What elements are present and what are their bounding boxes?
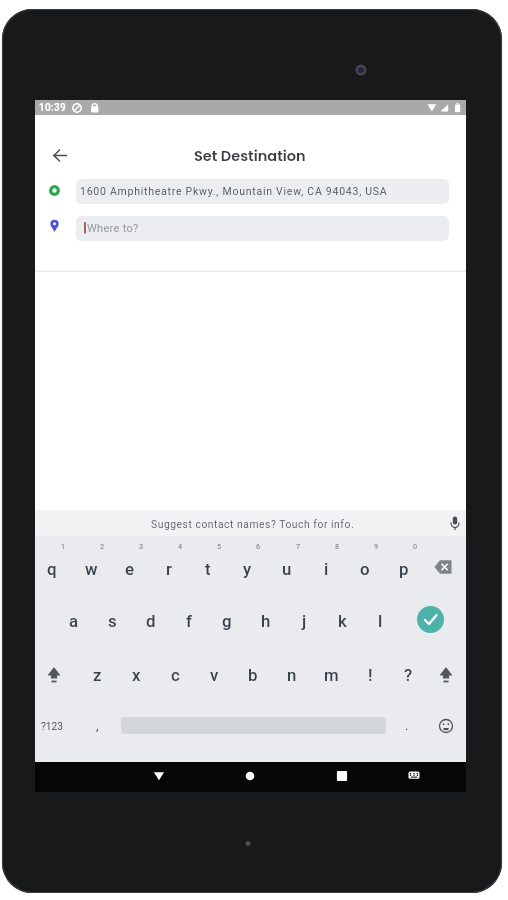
button[interactable]: e [20,547,240,591]
staticText: 8 [335,542,340,550]
staticText: n [287,665,297,685]
staticText: Suggest contact names? Touch for info. [151,518,355,530]
staticText: , [96,718,99,733]
staticText: e [125,559,135,579]
staticText: i [324,559,329,579]
button[interactable]: v [104,653,324,697]
staticText: Where to? [87,222,139,235]
staticText: x [132,665,141,685]
staticText: g [222,611,232,631]
button[interactable]: g [117,599,337,643]
staticText: 0 [413,542,418,550]
staticText: q [47,559,57,579]
staticText: p [399,559,409,579]
staticText: 1 [61,542,66,550]
staticText: o [360,559,370,579]
button[interactable]: j [194,599,414,643]
button[interactable]: k [232,599,452,643]
button[interactable]: s [2,599,222,643]
button[interactable] [35,510,466,536]
button[interactable]: n [182,653,402,697]
staticText: Set Destination [194,146,306,166]
button[interactable]: q [0,547,162,591]
staticText: j [302,611,307,631]
button[interactable] [76,179,449,204]
staticText: t [205,559,211,579]
button[interactable]: d [41,599,261,643]
staticText: 4 [178,542,183,550]
button[interactable]: ? [298,653,508,697]
button[interactable] [76,216,449,241]
button[interactable]: p [294,547,508,591]
button[interactable] [328,762,356,790]
staticText: 7 [296,542,301,550]
staticText: u [282,559,292,579]
staticText: w [85,559,98,579]
button[interactable]: y [137,547,357,591]
staticText: z [93,665,102,685]
staticText: h [261,611,271,631]
staticText: ? [404,665,413,685]
staticText: 1600 Amphitheatre Pkwy., Mountain View, … [80,185,388,197]
button[interactable]: z [0,653,207,697]
staticText: c [171,665,180,685]
staticText: m [324,665,339,685]
staticText: a [69,611,79,631]
button[interactable]: a [0,599,184,643]
button[interactable]: t [98,547,318,591]
button[interactable] [429,555,457,579]
button[interactable] [46,141,74,169]
staticText: k [338,611,347,631]
staticText: d [146,611,156,631]
button[interactable]: . [297,703,508,747]
button[interactable] [42,662,66,686]
button[interactable] [436,716,456,736]
button[interactable]: w [0,547,201,591]
button[interactable]: ! [260,653,480,697]
staticText: b [248,665,258,685]
button[interactable]: m [221,653,441,697]
staticText: 6 [256,542,261,550]
button[interactable] [417,606,444,633]
button[interactable]: ?123 [0,705,162,749]
staticText: 9 [374,542,379,550]
button[interactable] [145,762,173,790]
staticText: 5 [217,542,222,550]
button[interactable]: i [216,547,436,591]
button[interactable]: h [156,599,376,643]
staticText: 3 [139,542,144,550]
button[interactable]: u [177,547,397,591]
staticText: f [186,611,192,631]
staticText: s [108,611,117,631]
button[interactable] [400,761,428,789]
button[interactable] [434,662,458,686]
staticText: 2 [100,542,105,550]
staticText: ! [368,665,373,685]
staticText: l [378,611,383,631]
button[interactable]: f [79,599,299,643]
staticText: r [166,559,172,579]
button[interactable]: c [65,653,285,697]
staticText: 10:39 [39,102,66,114]
button[interactable]: b [143,653,363,697]
button[interactable]: r [59,547,279,591]
staticText: . [405,718,409,733]
button[interactable] [236,762,264,790]
button[interactable]: l [270,599,490,643]
staticText: ?123 [41,721,63,733]
button[interactable]: x [26,653,246,697]
button[interactable]: , [0,703,207,747]
button[interactable]: o [255,547,475,591]
staticText: v [210,665,219,685]
staticText: y [243,559,252,579]
